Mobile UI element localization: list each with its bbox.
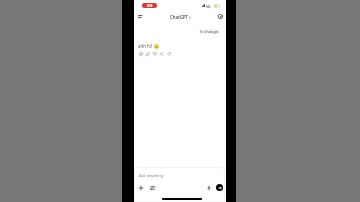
staticText: hi chatgpt: [200, 29, 219, 34]
button[interactable]: Dictate: [206, 185, 212, 191]
staticText: Ask anything: [139, 173, 164, 178]
staticText: 4:38: [147, 4, 153, 8]
button[interactable]: hi chatgpt: [199, 29, 220, 34]
staticText: 5G: [206, 4, 211, 9]
button[interactable]: Regenerate: [165, 50, 172, 57]
button[interactable]: Open sidebar: [136, 12, 145, 21]
button[interactable]: Tools: [149, 185, 155, 191]
button[interactable]: ChatGPT: [170, 14, 191, 20]
button[interactable]: Copy: [137, 50, 144, 57]
button[interactable]: Voice mode: [216, 184, 223, 191]
staticText: ahh hi!: [138, 43, 154, 49]
button[interactable]: Good response: [144, 50, 151, 57]
button[interactable]: Read aloud: [158, 50, 165, 57]
staticText: ChatGPT: [170, 14, 188, 20]
button[interactable]: Add attachment: [138, 185, 144, 191]
button[interactable]: New chat: [216, 12, 225, 21]
button[interactable]: Bad response: [151, 50, 158, 57]
